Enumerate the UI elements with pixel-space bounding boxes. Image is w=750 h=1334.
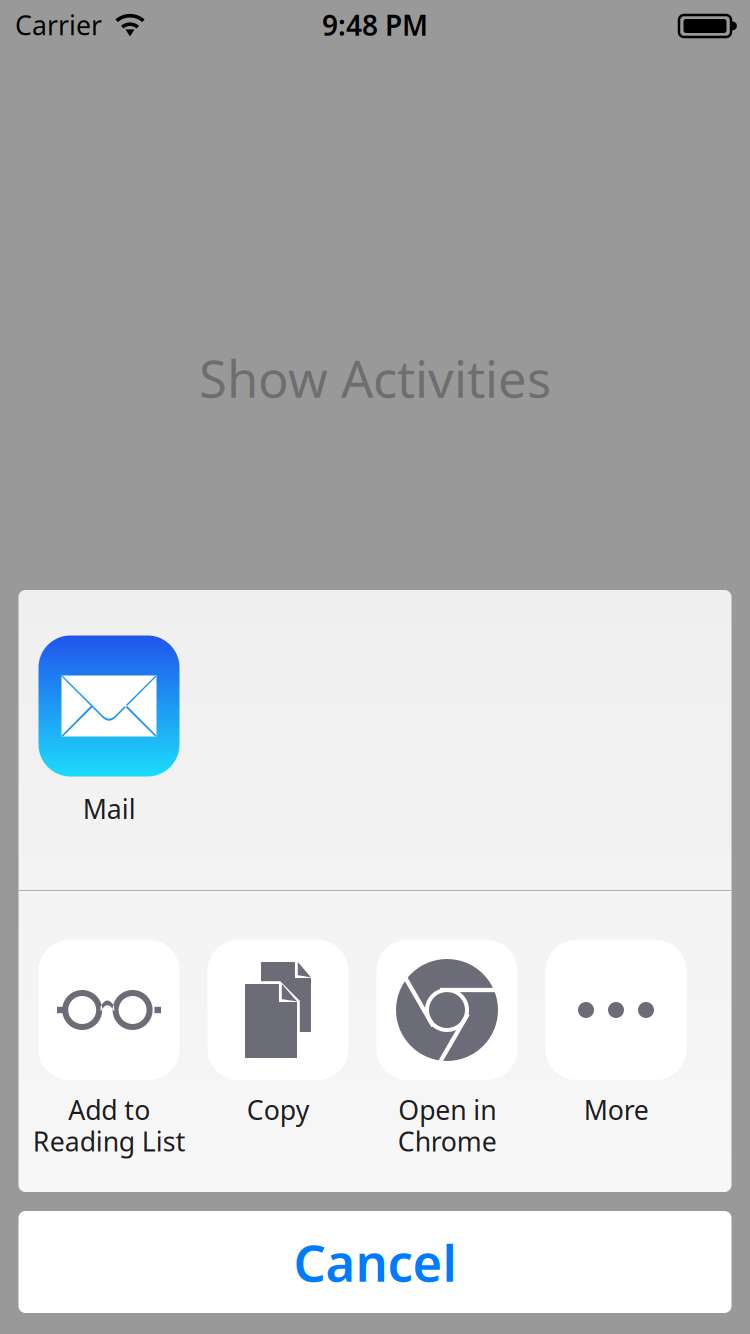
staticText: Cancel: [293, 1228, 456, 1296]
staticText: 9:48 PM: [322, 6, 428, 44]
button[interactable]: More: [545, 940, 686, 1191]
staticText: Show Activities: [199, 344, 551, 412]
staticText: More: [583, 1092, 648, 1127]
staticText: Add to Reading List: [32, 1092, 185, 1159]
staticText: Open in Chrome: [397, 1092, 496, 1159]
button[interactable]: Open in Chrome: [376, 940, 517, 1191]
button[interactable]: Mail: [38, 636, 179, 887]
button[interactable]: Cancel: [18, 1211, 731, 1313]
staticText: Carrier: [15, 7, 102, 43]
button[interactable]: Copy: [207, 940, 348, 1191]
staticText: Copy: [246, 1092, 309, 1127]
button[interactable]: Show Activities: [95, 343, 655, 413]
button[interactable]: Add to Reading List: [38, 940, 179, 1191]
staticText: Mail: [82, 791, 135, 826]
